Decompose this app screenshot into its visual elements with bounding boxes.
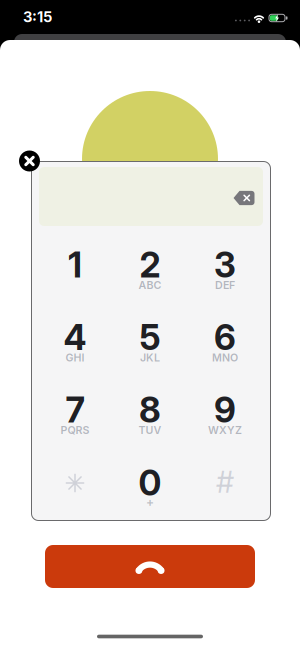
button[interactable]: 2 [113, 239, 187, 301]
button[interactable]: 6 [188, 311, 262, 373]
staticText: JKL [140, 351, 160, 364]
button[interactable]: Delete [233, 190, 254, 205]
button[interactable]: 3 [188, 239, 262, 301]
staticText: 5 [139, 317, 160, 358]
button[interactable]: Star [38, 457, 112, 519]
staticText: GHI [65, 351, 84, 364]
button[interactable]: 4 [38, 311, 112, 373]
button[interactable]: 0 [113, 457, 187, 519]
staticText: 7 [65, 390, 84, 430]
staticText: 3:15 [23, 8, 52, 26]
button[interactable]: Call [45, 545, 255, 588]
staticText: ABC [138, 279, 161, 291]
button[interactable]: 7 [38, 384, 112, 446]
staticText: PQRS [60, 424, 89, 436]
staticText: MNO [212, 351, 238, 364]
staticText: 8 [139, 390, 161, 430]
staticText: DEF [215, 279, 235, 291]
button[interactable]: 1 [38, 239, 112, 301]
staticText: WXYZ [208, 424, 242, 436]
staticText: TUV [138, 424, 161, 436]
staticText: 0 [138, 463, 161, 503]
staticText: 2 [139, 245, 160, 285]
button[interactable]: 9 [188, 384, 262, 446]
button[interactable]: Close [19, 150, 40, 171]
staticText: 6 [214, 317, 236, 358]
button[interactable]: Pound [188, 457, 262, 519]
staticText: 4 [63, 317, 86, 358]
staticText: 9 [214, 390, 236, 430]
button[interactable]: 8 [113, 384, 187, 446]
staticText: 1 [68, 245, 82, 285]
staticText: + [146, 495, 154, 509]
staticText: # [216, 465, 234, 499]
button[interactable]: 5 [113, 311, 187, 373]
staticText: 3 [214, 245, 236, 285]
